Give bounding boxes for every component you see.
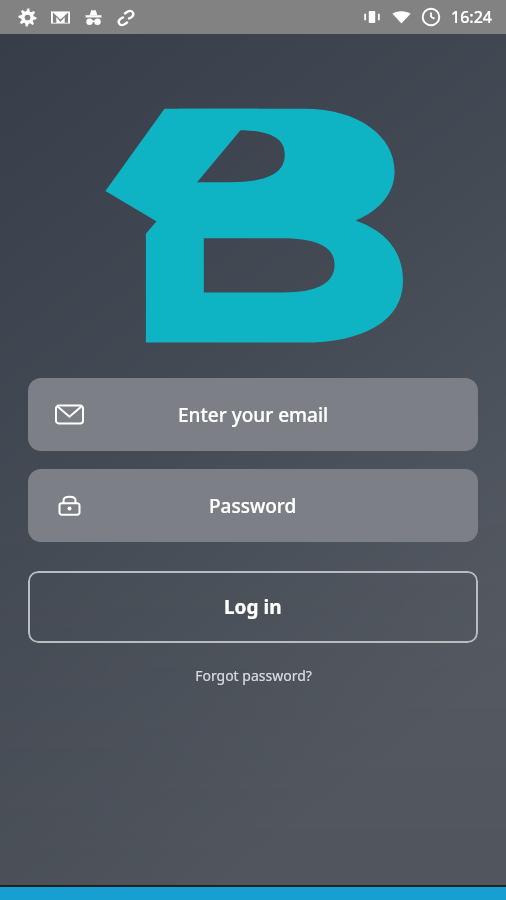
button[interactable]: Email [28,378,478,451]
staticText: Enter your email [178,402,329,428]
button[interactable]: Password [28,469,478,542]
staticText: Forgot password? [195,666,312,685]
staticText: 16:24 [451,6,492,28]
other: Email [56,401,83,428]
button[interactable]: Forgot password? [185,662,322,689]
button[interactable]: Log in [28,571,478,643]
staticText: Password [209,493,297,519]
other: Password [56,492,83,519]
staticText: Log in [224,594,282,620]
